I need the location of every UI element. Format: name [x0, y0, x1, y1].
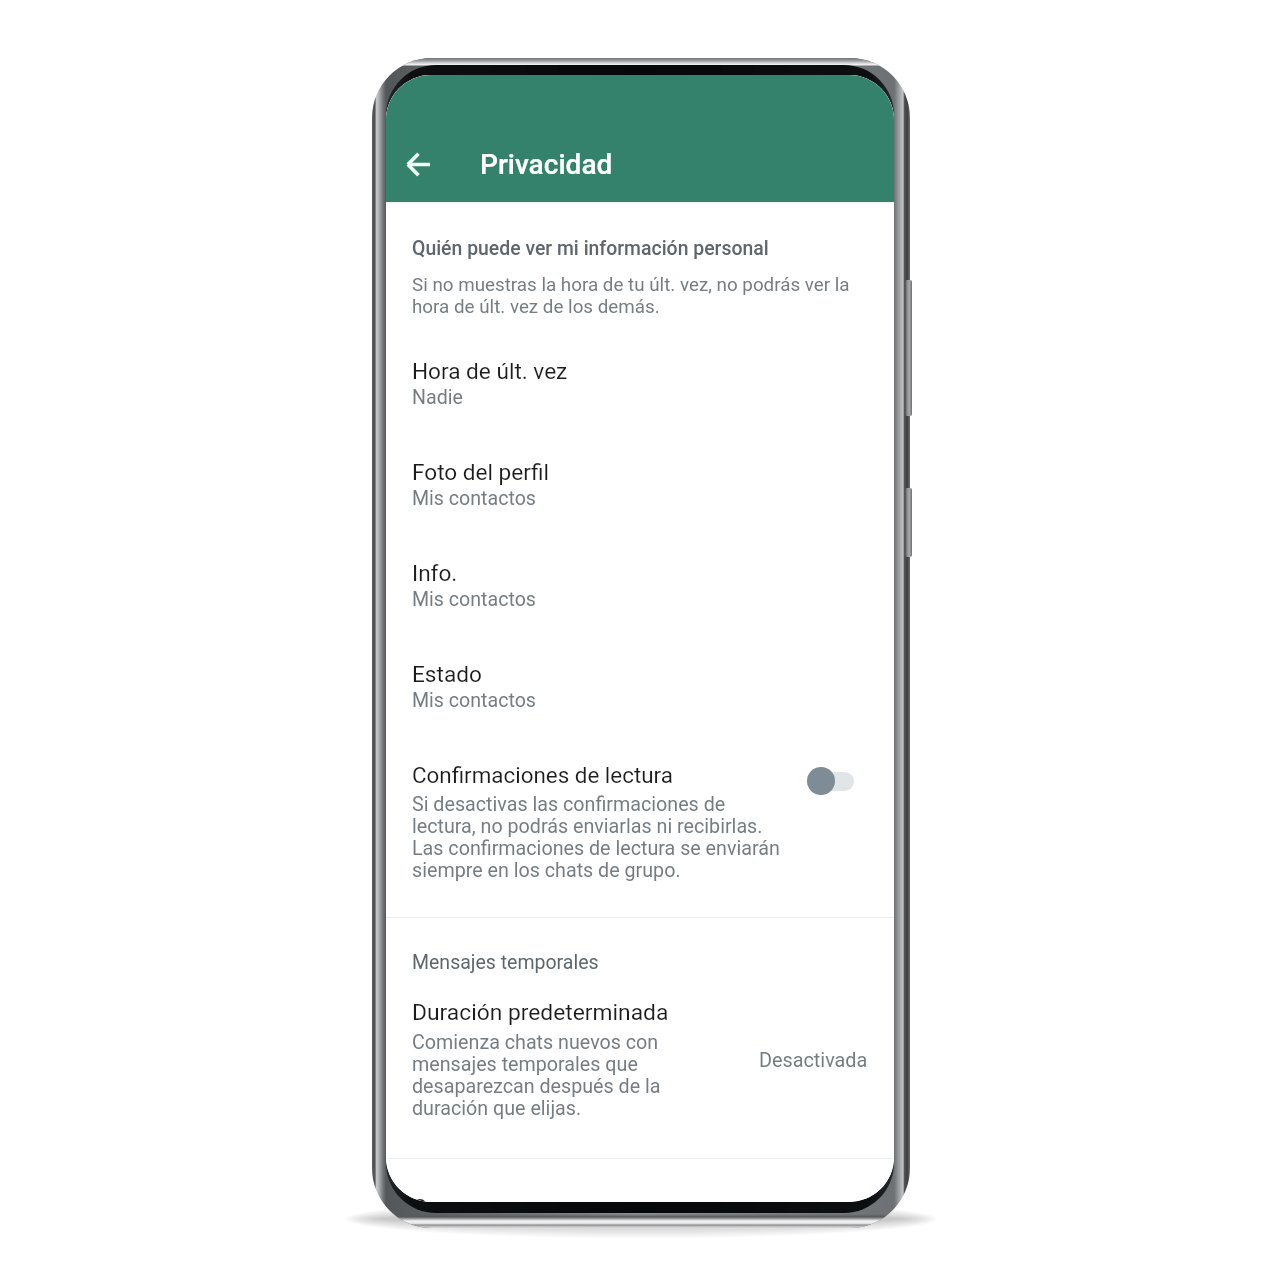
- staticText: Nadie: [412, 386, 463, 409]
- staticText: Comienza chats nuevos con mensajes tempo…: [412, 1032, 661, 1120]
- staticText: Duración predeterminada: [412, 999, 669, 1026]
- staticText: Mis contactos: [412, 487, 536, 510]
- staticText: Foto del perfil: [412, 459, 549, 485]
- staticText: Privacidad: [480, 148, 613, 181]
- button[interactable]: Estado: [386, 639, 894, 723]
- staticText: Si no muestras la hora de tu últ. vez, n…: [412, 274, 850, 318]
- staticText: Grupos: [412, 1195, 487, 1202]
- staticText: Desactivada: [759, 1049, 868, 1072]
- staticText: Estado: [412, 661, 482, 687]
- staticText: Si desactivas las confirmaciones de lect…: [412, 794, 780, 882]
- button[interactable]: Foto del perfil: [386, 437, 894, 521]
- staticText: Quién puede ver mi información personal: [412, 237, 769, 260]
- button[interactable]: Grupos: [386, 1175, 894, 1202]
- button[interactable]: Hora de últ. vez: [386, 336, 894, 420]
- button[interactable]: Atrás: [390, 136, 446, 192]
- staticText: Confirmaciones de lectura: [412, 762, 673, 788]
- staticText: Mensajes temporales: [412, 951, 599, 974]
- staticText: Hora de últ. vez: [412, 358, 568, 384]
- staticText: Mis contactos: [412, 588, 536, 611]
- staticText: Mis contactos: [412, 689, 536, 712]
- button[interactable]: Confirmaciones de lectura: [799, 751, 871, 811]
- staticText: Info.: [412, 560, 458, 586]
- button[interactable]: Info.: [386, 538, 894, 622]
